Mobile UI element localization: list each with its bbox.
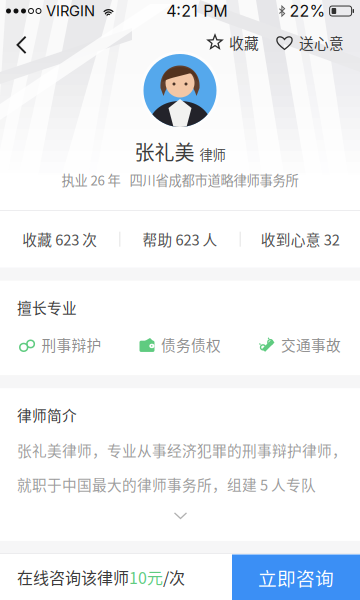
- staticText: 擅长专业: [17, 297, 77, 318]
- staticText: 债务债权: [161, 334, 221, 355]
- button[interactable]: 立即咨询: [232, 554, 360, 600]
- button[interactable]: 送心意: [265, 23, 350, 57]
- staticText: /次: [163, 565, 185, 589]
- staticText: 立即咨询: [258, 564, 334, 591]
- staticText: 收藏 623 次: [22, 229, 97, 250]
- staticText: 收到心意 32: [261, 229, 340, 250]
- staticText: 收藏: [229, 32, 259, 53]
- button[interactable]: 收藏: [201, 23, 265, 57]
- staticText: 张礼美律师，专业从事经济犯罪的刑事辩护律师，: [17, 439, 347, 461]
- staticText: 刑事辩护: [41, 334, 101, 355]
- staticText: VIRGIN: [46, 2, 95, 20]
- staticText: 送心意: [299, 32, 344, 53]
- staticText: 律师: [199, 145, 225, 164]
- staticText: 就职于中国最大的律师事务所，组建 5 人专队: [17, 474, 316, 495]
- staticText: 交通事故: [281, 334, 341, 355]
- staticText: 律师简介: [17, 404, 77, 425]
- button[interactable]: 返回: [0, 20, 42, 59]
- staticText: 4:21 PM: [166, 1, 227, 21]
- staticText: 22%: [290, 1, 326, 21]
- staticText: 张礼美: [134, 137, 194, 166]
- staticText: 执业 26 年 四川省成都市道略律师事务所: [61, 170, 298, 189]
- staticText: 10元: [129, 565, 163, 589]
- staticText: 在线咨询该律师: [17, 565, 129, 589]
- staticText: 帮助 623 人: [142, 229, 217, 250]
